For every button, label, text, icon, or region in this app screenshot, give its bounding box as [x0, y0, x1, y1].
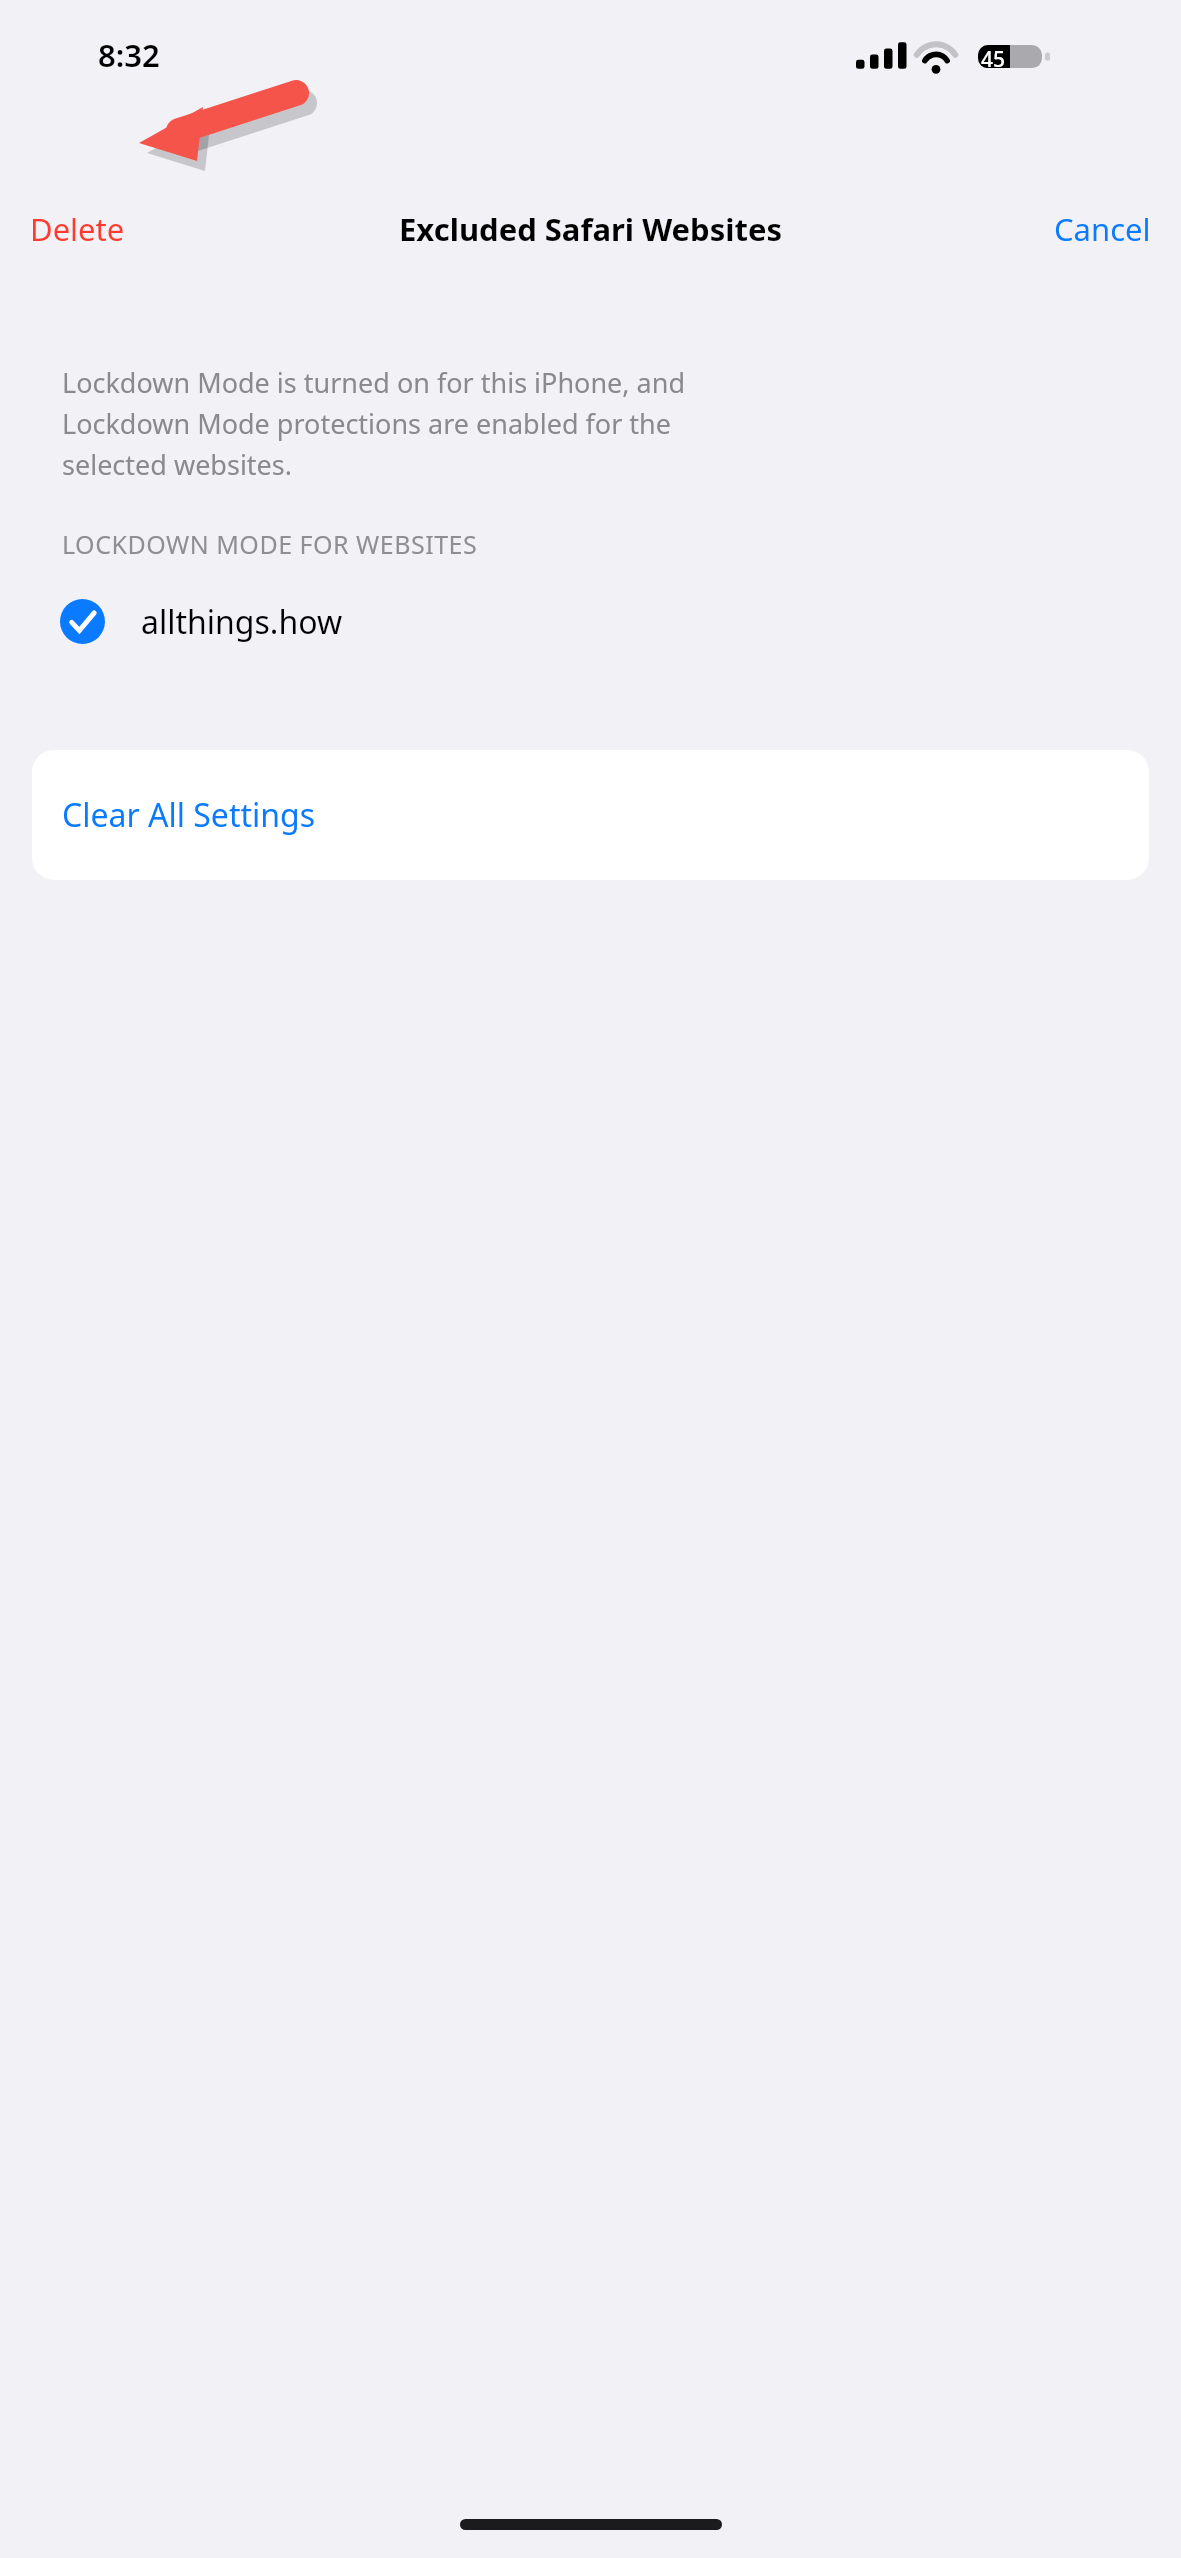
button[interactable]: Cancel	[1036, 196, 1169, 262]
staticText: Delete	[30, 208, 125, 250]
staticText: Clear All Settings	[62, 793, 316, 837]
button[interactable]: Delete	[12, 196, 143, 262]
staticText: Lockdown Mode is turned on for this iPho…	[62, 364, 686, 483]
button[interactable]: Clear All Settings	[32, 750, 1149, 880]
staticText: allthings.how	[141, 600, 343, 644]
other: Selected	[60, 599, 105, 644]
staticText: Cancel	[1054, 208, 1151, 250]
button[interactable]: Selected	[0, 591, 1181, 652]
staticText: 8:32	[98, 34, 160, 76]
staticText: Excluded Safari Websites	[399, 208, 783, 250]
staticText: LOCKDOWN MODE FOR WEBSITES	[62, 527, 478, 561]
staticText: 45	[981, 45, 1006, 74]
